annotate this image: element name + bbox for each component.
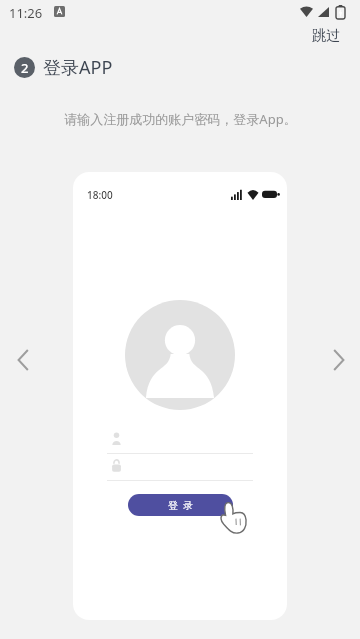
button[interactable]: 登 录 xyxy=(128,494,233,516)
button[interactable] xyxy=(107,457,253,481)
staticText: 登 录 xyxy=(168,498,194,512)
button[interactable]: Previous xyxy=(8,340,40,380)
staticText: 18:00 xyxy=(87,188,113,202)
button[interactable]: Next xyxy=(322,340,354,380)
staticText: 跳过 xyxy=(312,27,340,45)
other: Tap xyxy=(220,502,248,534)
staticText: 请输入注册成功的账户密码，登录App。 xyxy=(64,110,297,128)
staticText: 2 xyxy=(21,59,29,77)
staticText: 登录APP xyxy=(43,55,113,80)
button[interactable]: 跳过 xyxy=(308,24,344,48)
staticText: 11:26 xyxy=(9,4,43,22)
button[interactable] xyxy=(107,430,253,454)
